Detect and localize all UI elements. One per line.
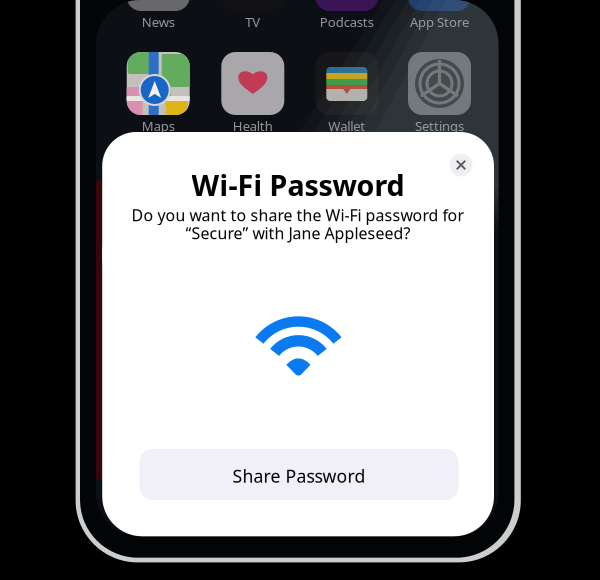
staticText: “Secure” with Jane Appleseed? [186, 222, 411, 244]
button[interactable]: Close [449, 153, 472, 176]
staticText: Share Password [232, 464, 365, 488]
staticText: Do you want to share the Wi-Fi password … [132, 204, 465, 226]
staticText: Maps [142, 117, 175, 135]
staticText: News [142, 13, 175, 31]
staticText: App Store [410, 13, 469, 31]
staticText: Wallet [328, 117, 365, 135]
staticText: Health [233, 117, 273, 135]
staticText: Wi-Fi Password [192, 166, 405, 204]
staticText: Settings [415, 117, 464, 135]
staticText: TV [245, 13, 260, 31]
staticText: Podcasts [320, 13, 374, 31]
button[interactable]: Share Password [139, 449, 458, 500]
